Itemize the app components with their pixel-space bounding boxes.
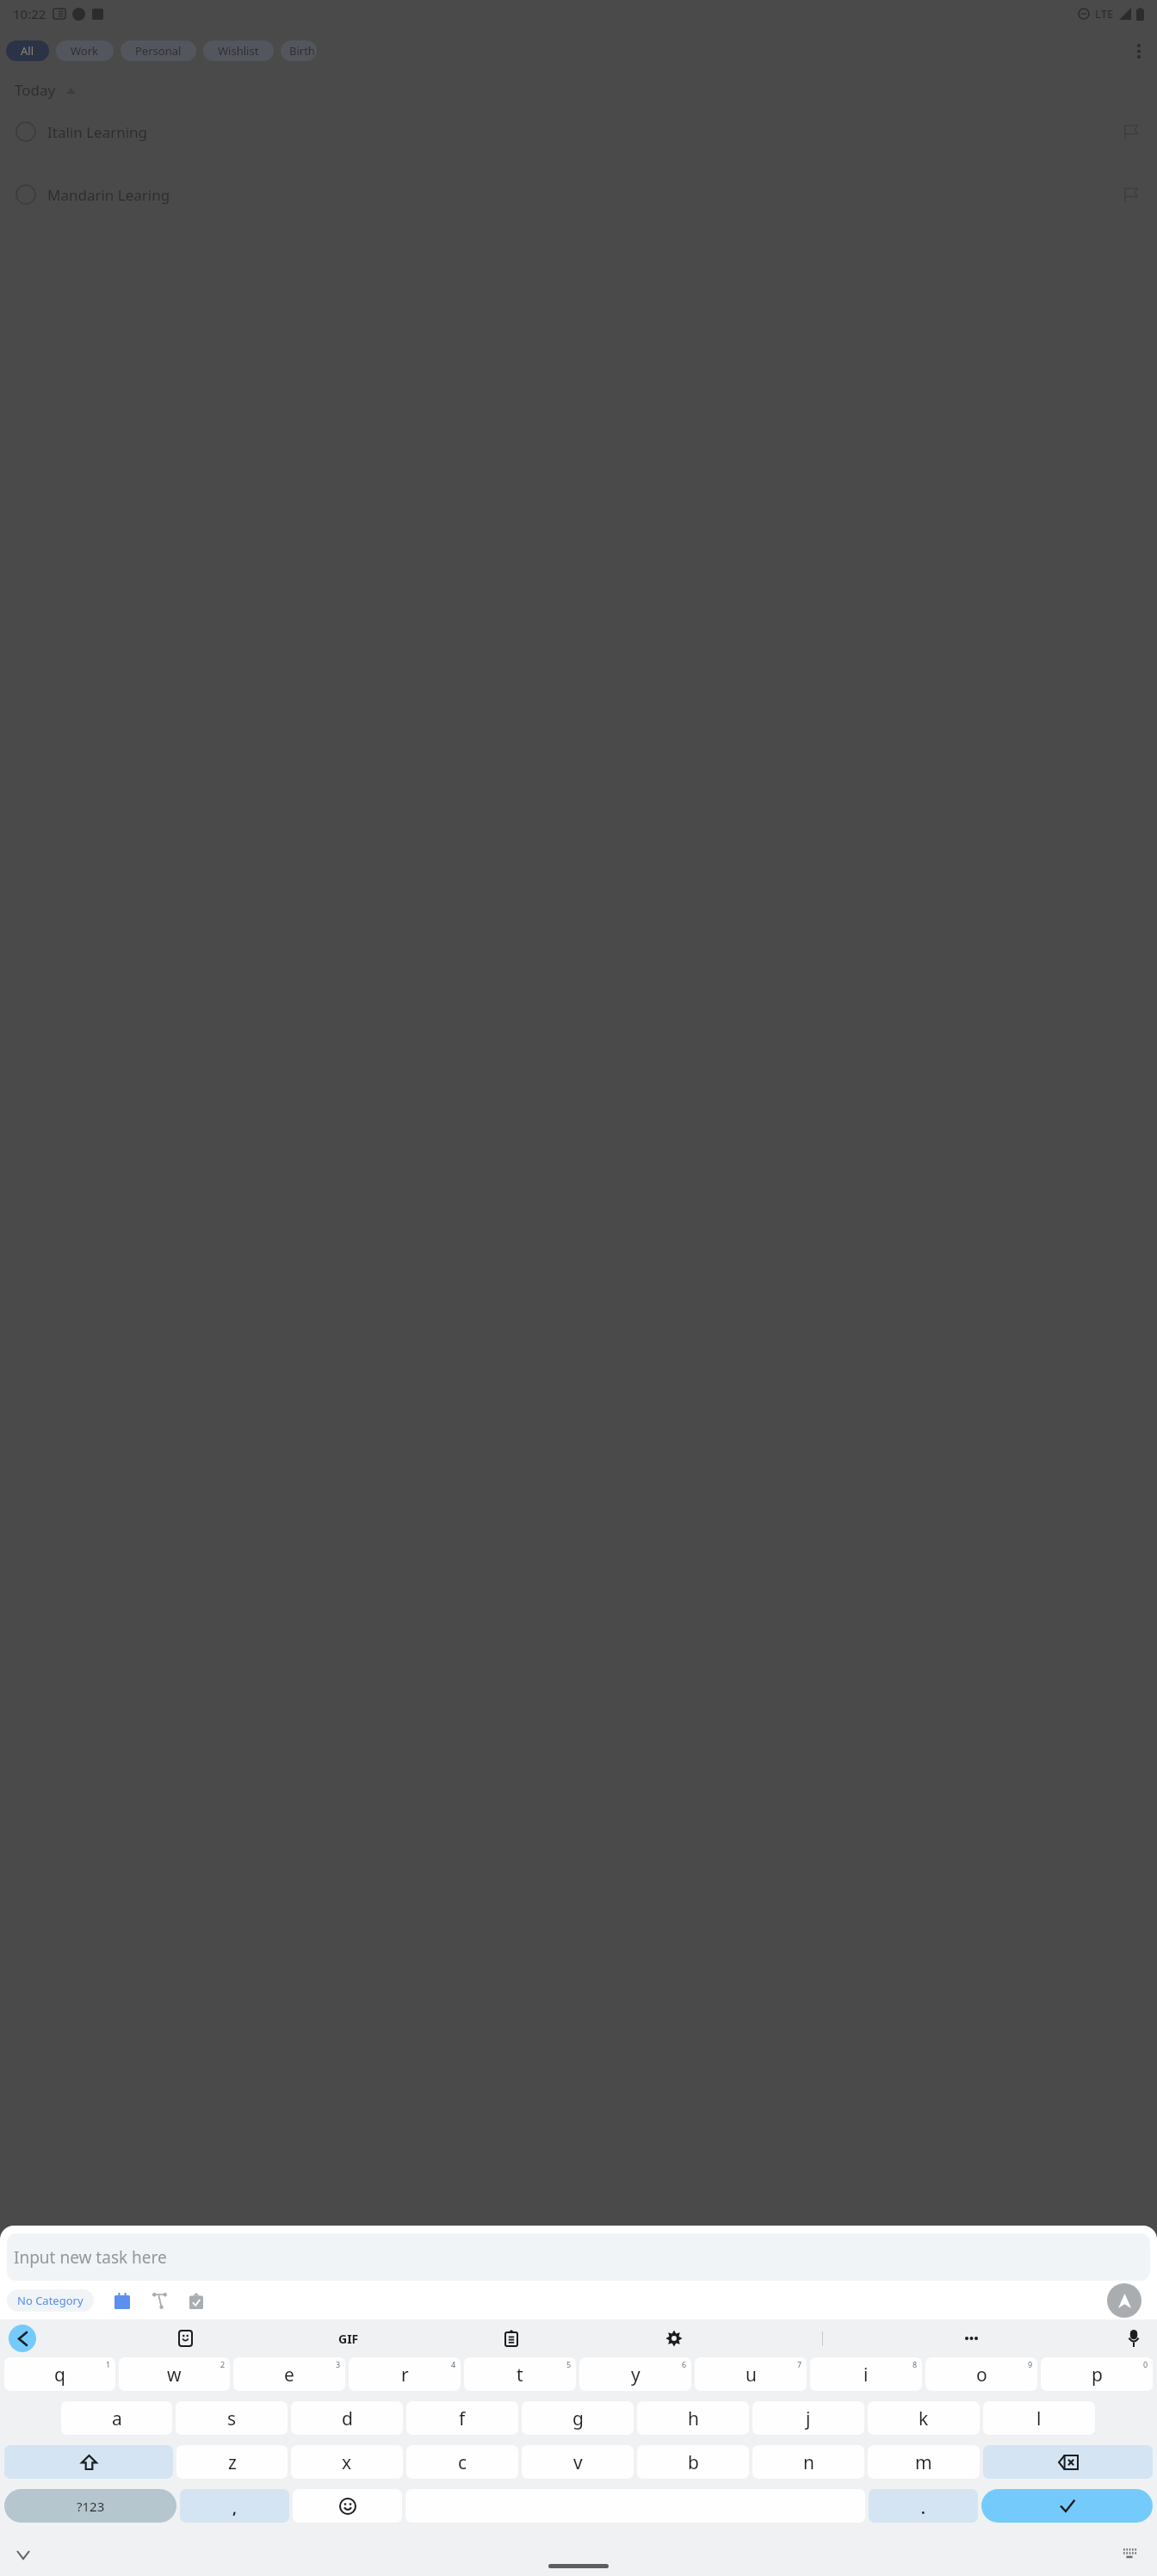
- staticText: r: [401, 2362, 409, 2387]
- button[interactable]: f: [406, 2401, 518, 2435]
- button[interactable]: Subtasks: [146, 2288, 172, 2313]
- button[interactable]: 9: [925, 2357, 1037, 2391]
- staticText: 6: [682, 2359, 687, 2369]
- staticText: All: [21, 43, 34, 59]
- button[interactable]: No Category: [7, 2289, 94, 2312]
- button[interactable]: x: [291, 2445, 403, 2479]
- button[interactable]: 5: [464, 2357, 576, 2391]
- staticText: c: [458, 2450, 467, 2475]
- button[interactable]: Send: [1107, 2283, 1142, 2318]
- button[interactable]: Personal: [121, 40, 196, 61]
- staticText: h: [688, 2406, 699, 2431]
- button[interactable]: ?123: [4, 2489, 176, 2523]
- button[interactable]: m: [868, 2445, 980, 2479]
- button[interactable]: Hide keyboard: [7, 2538, 40, 2571]
- staticText: Wishlist: [218, 43, 259, 59]
- button[interactable]: 8: [810, 2357, 922, 2391]
- button[interactable]: 0: [1041, 2357, 1153, 2391]
- button[interactable]: Collapse Today: [64, 84, 77, 97]
- button[interactable]: Clipboard: [497, 2324, 526, 2353]
- staticText: g: [572, 2406, 584, 2431]
- button[interactable]: Set due date: [109, 2288, 135, 2313]
- staticText: b: [688, 2450, 699, 2475]
- button[interactable]: Birth: [281, 40, 317, 61]
- button[interactable]: Checklist: [183, 2288, 209, 2313]
- button[interactable]: j: [752, 2401, 864, 2435]
- staticText: j: [806, 2406, 811, 2431]
- staticText: t: [517, 2362, 523, 2387]
- button[interactable]: 2: [119, 2357, 230, 2391]
- button[interactable]: d: [291, 2401, 403, 2435]
- staticText: 5: [566, 2359, 572, 2369]
- staticText: 7: [797, 2359, 802, 2369]
- staticText: a: [112, 2406, 122, 2431]
- staticText: w: [167, 2362, 182, 2387]
- button[interactable]: All: [6, 40, 49, 61]
- staticText: Personal: [135, 43, 182, 59]
- button[interactable]: Shift: [4, 2445, 173, 2479]
- button[interactable]: Emoji: [293, 2489, 402, 2523]
- button[interactable]: 7: [695, 2357, 807, 2391]
- button[interactable]: Wishlist: [203, 40, 274, 61]
- button[interactable]: Stickers: [170, 2324, 200, 2353]
- staticText: No Category: [17, 2293, 84, 2308]
- button[interactable]: b: [637, 2445, 749, 2479]
- button[interactable]: h: [637, 2401, 749, 2435]
- staticText: m: [915, 2450, 932, 2475]
- staticText: ,: [232, 2499, 237, 2518]
- staticText: 3: [336, 2359, 341, 2369]
- button[interactable]: Input new task here: [7, 2233, 1150, 2281]
- staticText: 2: [220, 2359, 226, 2369]
- staticText: y: [631, 2362, 640, 2387]
- button[interactable]: 1: [4, 2357, 115, 2391]
- staticText: 0: [1143, 2359, 1148, 2369]
- button[interactable]: ,: [180, 2489, 289, 2523]
- button[interactable]: GIF: [334, 2324, 363, 2353]
- staticText: s: [227, 2406, 237, 2431]
- staticText: p: [1092, 2362, 1103, 2387]
- button[interactable]: s: [176, 2401, 288, 2435]
- staticText: f: [459, 2406, 466, 2431]
- staticText: Today: [15, 80, 56, 100]
- staticText: v: [573, 2450, 583, 2475]
- button[interactable]: Flag: [1119, 121, 1142, 143]
- button[interactable]: c: [406, 2445, 518, 2479]
- button[interactable]: 3: [233, 2357, 345, 2391]
- button[interactable]: a: [61, 2401, 172, 2435]
- staticText: 9: [1028, 2359, 1033, 2369]
- button[interactable]: More options: [1124, 40, 1154, 61]
- staticText: l: [1036, 2406, 1042, 2431]
- button[interactable]: .: [869, 2489, 978, 2523]
- button[interactable]: Flag: [1119, 183, 1142, 206]
- staticText: x: [342, 2450, 352, 2475]
- button[interactable]: k: [868, 2401, 980, 2435]
- button[interactable]: Back: [9, 2325, 36, 2352]
- staticText: 4: [451, 2359, 456, 2369]
- button[interactable]: g: [522, 2401, 634, 2435]
- button[interactable]: More: [956, 2324, 986, 2353]
- button[interactable]: Switch keyboard: [1114, 2538, 1147, 2571]
- button[interactable]: n: [752, 2445, 864, 2479]
- staticText: u: [746, 2362, 757, 2387]
- staticText: .: [921, 2499, 925, 2518]
- button[interactable]: Settings: [659, 2324, 689, 2353]
- button[interactable]: v: [522, 2445, 634, 2479]
- staticText: i: [863, 2362, 869, 2387]
- staticText: d: [342, 2406, 353, 2431]
- staticText: Italin Learning: [47, 122, 148, 142]
- button[interactable]: 6: [579, 2357, 691, 2391]
- button[interactable]: Done: [981, 2489, 1153, 2523]
- button[interactable]: Work: [56, 40, 114, 61]
- button[interactable]: Backspace: [983, 2445, 1153, 2479]
- staticText: ?123: [77, 2498, 105, 2515]
- staticText: Input new task here: [14, 2246, 167, 2269]
- button[interactable]: Voice input: [1119, 2324, 1148, 2353]
- button[interactable]: l: [983, 2401, 1095, 2435]
- staticText: 8: [913, 2359, 918, 2369]
- button[interactable]: z: [176, 2445, 288, 2479]
- button[interactable]: 4: [349, 2357, 461, 2391]
- staticText: k: [919, 2406, 929, 2431]
